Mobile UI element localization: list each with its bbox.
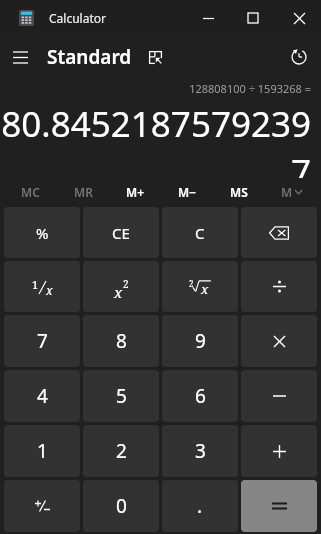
staticText: MC bbox=[21, 184, 40, 200]
button[interactable]: 7 bbox=[4, 315, 80, 367]
button[interactable]: Close bbox=[277, 2, 321, 34]
button[interactable]: 9 bbox=[162, 315, 238, 367]
staticText: 2 bbox=[116, 438, 127, 464]
button[interactable]: 1 bbox=[4, 425, 80, 477]
button[interactable]: Minimize bbox=[186, 2, 230, 34]
button[interactable]: 8 bbox=[83, 315, 159, 367]
button[interactable]: History bbox=[281, 39, 317, 75]
button[interactable]: Open Navigation bbox=[0, 39, 40, 75]
button[interactable]: Square root bbox=[162, 261, 238, 312]
staticText: Calculator bbox=[49, 10, 106, 26]
button[interactable]: C bbox=[162, 207, 238, 258]
button[interactable]: CE bbox=[83, 207, 159, 258]
staticText: 9 bbox=[195, 328, 206, 354]
button[interactable]: % bbox=[4, 207, 80, 258]
staticText: MS bbox=[230, 184, 248, 200]
staticText: x bbox=[201, 280, 209, 298]
staticText: 2 bbox=[189, 278, 194, 289]
staticText: 0 bbox=[116, 493, 127, 519]
staticText: M bbox=[281, 184, 293, 200]
button[interactable]: Divide bbox=[241, 261, 317, 312]
staticText: 80.84521875792397 bbox=[0, 100, 311, 178]
button[interactable]: Positive Negative bbox=[4, 480, 80, 532]
button[interactable]: Multiply bbox=[241, 315, 317, 367]
button[interactable]: x squared bbox=[83, 261, 159, 312]
button[interactable]: 2 bbox=[83, 425, 159, 477]
staticText: C bbox=[195, 223, 205, 243]
button[interactable]: M bbox=[265, 178, 317, 206]
button[interactable]: 4 bbox=[4, 370, 80, 422]
button[interactable]: MR bbox=[57, 178, 109, 206]
staticText: MR bbox=[74, 184, 93, 200]
staticText: M+ bbox=[126, 184, 145, 200]
button[interactable]: 3 bbox=[162, 425, 238, 477]
button[interactable]: M+ bbox=[109, 178, 161, 206]
button[interactable]: 0 bbox=[83, 480, 159, 532]
staticText: 5 bbox=[116, 383, 127, 409]
button[interactable]: MS bbox=[213, 178, 265, 206]
button[interactable]: M− bbox=[161, 178, 213, 206]
staticText: M− bbox=[178, 184, 197, 200]
staticText: 1 bbox=[37, 438, 48, 464]
button[interactable]: One divided by x bbox=[4, 261, 80, 312]
staticText: 3 bbox=[195, 438, 206, 464]
staticText: 4 bbox=[37, 383, 48, 409]
button[interactable]: Keep on top bbox=[139, 41, 171, 73]
staticText: x bbox=[114, 282, 123, 302]
button[interactable]: MC bbox=[4, 178, 57, 206]
staticText: 7 bbox=[37, 328, 48, 354]
button[interactable]: Equals bbox=[241, 480, 317, 532]
staticText: CE bbox=[112, 223, 130, 243]
staticText: % bbox=[36, 223, 49, 243]
button[interactable]: . bbox=[162, 480, 238, 532]
button[interactable]: Plus bbox=[241, 425, 317, 477]
staticText: 8 bbox=[116, 328, 127, 354]
staticText: Standard bbox=[47, 44, 132, 70]
staticText: x bbox=[46, 282, 53, 298]
button[interactable]: Minus bbox=[241, 370, 317, 422]
staticText: 128808100 ÷ 1593268 = bbox=[0, 81, 311, 96]
staticText: 2 bbox=[123, 277, 129, 291]
staticText: 6 bbox=[195, 383, 206, 409]
button[interactable]: Maximize bbox=[231, 2, 275, 34]
button[interactable]: Backspace bbox=[241, 207, 317, 258]
staticText: . bbox=[197, 493, 203, 519]
button[interactable]: 5 bbox=[83, 370, 159, 422]
staticText: 1 bbox=[32, 277, 39, 292]
button[interactable]: 6 bbox=[162, 370, 238, 422]
